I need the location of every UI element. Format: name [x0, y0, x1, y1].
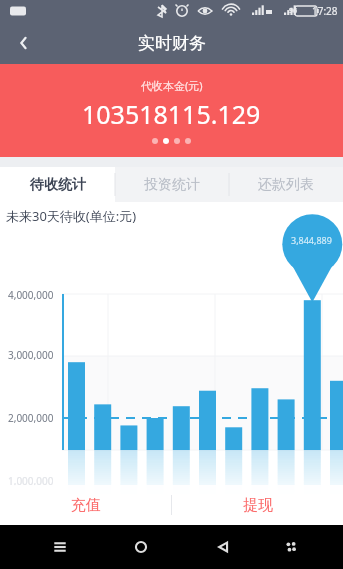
button[interactable]: Home — [122, 528, 160, 566]
staticText: 96 — [289, 6, 298, 16]
staticText: 1,000,000 — [8, 474, 54, 488]
staticText: 3,000,000 — [8, 348, 54, 362]
button[interactable]: 待收统计 — [0, 167, 115, 202]
button[interactable]: 还款列表 — [229, 167, 343, 202]
staticText: 代收本金(元) — [141, 78, 203, 93]
staticText: 3,844,889 — [291, 234, 332, 246]
staticText: 未来30天待收(单位:元) — [6, 207, 137, 225]
staticText: 投资统计 — [144, 176, 200, 194]
button[interactable]: 充值 — [0, 485, 171, 525]
staticText: 实时财务 — [138, 33, 206, 54]
staticText: 待收统计 — [30, 176, 86, 194]
button[interactable]: Back — [203, 528, 241, 566]
staticText: 4,000,000 — [8, 288, 54, 302]
button[interactable]: More — [272, 528, 310, 566]
staticText: 2,000,000 — [8, 411, 54, 425]
button[interactable]: Back — [6, 25, 42, 61]
staticText: 17:28 — [312, 4, 338, 18]
staticText: 103518115.129 — [82, 97, 261, 131]
button[interactable]: 提现 — [172, 485, 343, 525]
staticText: 提现 — [243, 496, 273, 515]
button[interactable]: 投资统计 — [115, 167, 229, 202]
button[interactable]: Menu — [41, 528, 79, 566]
staticText: 充值 — [71, 496, 101, 515]
staticText: 还款列表 — [258, 176, 314, 194]
